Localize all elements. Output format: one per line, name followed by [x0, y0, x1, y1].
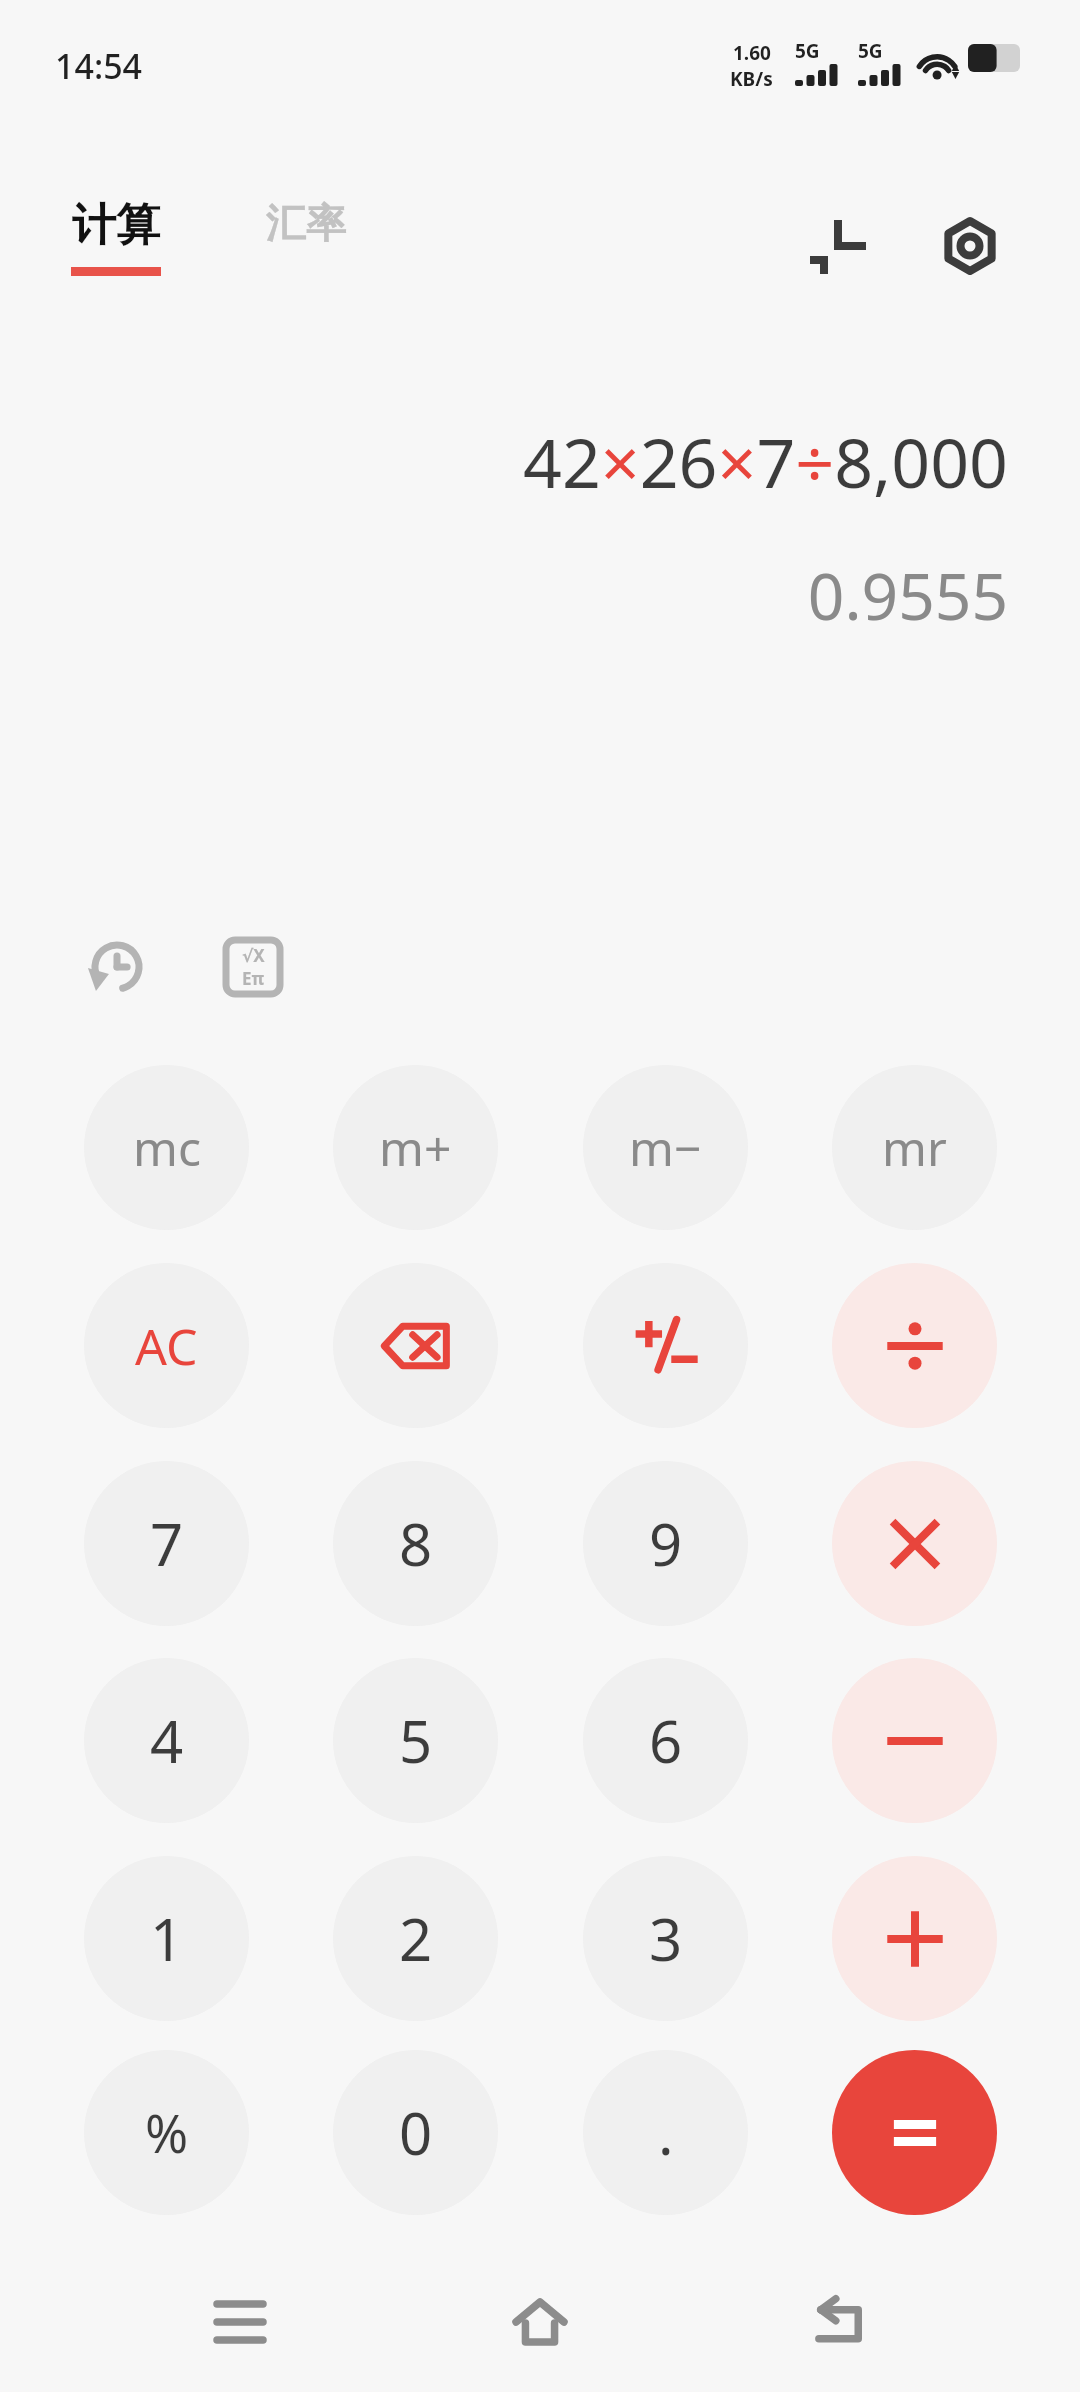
- staticText: %: [145, 2097, 189, 2168]
- button[interactable]: Collapse: [790, 198, 886, 294]
- staticText: KB/s: [730, 66, 773, 92]
- staticText: 7: [150, 1504, 184, 1583]
- staticText: 3: [649, 1899, 683, 1978]
- button[interactable]: Back: [780, 2262, 900, 2382]
- button[interactable]: 1: [84, 1856, 249, 2021]
- button[interactable]: Recents: [180, 2262, 300, 2382]
- staticText: mc: [133, 1115, 201, 1180]
- button[interactable]: 汇率: [250, 190, 362, 256]
- staticText: 14:54: [55, 43, 143, 89]
- button[interactable]: Settings: [922, 198, 1018, 294]
- button[interactable]: Divide: [832, 1263, 997, 1428]
- button[interactable]: 5: [333, 1658, 498, 1823]
- staticText: 5G: [795, 38, 820, 64]
- button[interactable]: 2: [333, 1856, 498, 2021]
- button[interactable]: %: [84, 2050, 249, 2215]
- button[interactable]: m−: [583, 1065, 748, 1230]
- staticText: 计算: [72, 198, 160, 253]
- button[interactable]: m+: [333, 1065, 498, 1230]
- staticText: 2: [399, 1899, 433, 1978]
- staticText: 0: [399, 2093, 433, 2172]
- button[interactable]: Multiply: [832, 1461, 997, 1626]
- staticText: mr: [882, 1115, 947, 1180]
- button[interactable]: mc: [84, 1065, 249, 1230]
- button[interactable]: Equals: [832, 2050, 997, 2215]
- button[interactable]: 0: [333, 2050, 498, 2215]
- staticText: 5: [399, 1701, 433, 1780]
- button[interactable]: Plus minus: [583, 1263, 748, 1428]
- staticText: AC: [135, 1312, 198, 1380]
- staticText: .: [658, 2093, 674, 2172]
- button[interactable]: History: [62, 912, 172, 1022]
- button[interactable]: Subtract: [832, 1658, 997, 1823]
- staticText: 汇率: [266, 198, 346, 248]
- staticText: 4: [150, 1701, 184, 1780]
- button[interactable]: mr: [832, 1065, 997, 1230]
- button[interactable]: Backspace: [333, 1263, 498, 1428]
- button[interactable]: AC: [84, 1263, 249, 1428]
- staticText: m+: [379, 1115, 452, 1180]
- button[interactable]: Home: [480, 2262, 600, 2382]
- button[interactable]: 4: [84, 1658, 249, 1823]
- button[interactable]: .: [583, 2050, 748, 2215]
- staticText: 42×26×7÷8,000: [523, 415, 1008, 508]
- staticText: 1: [150, 1899, 184, 1978]
- staticText: 0.9555: [807, 552, 1008, 639]
- button[interactable]: 7: [84, 1461, 249, 1626]
- staticText: 5G: [858, 38, 883, 64]
- staticText: 8: [399, 1504, 433, 1583]
- staticText: 6: [649, 1701, 683, 1780]
- staticText: m−: [629, 1115, 702, 1180]
- button[interactable]: 8: [333, 1461, 498, 1626]
- button[interactable]: 3: [583, 1856, 748, 2021]
- button[interactable]: Add: [832, 1856, 997, 2021]
- button[interactable]: 6: [583, 1658, 748, 1823]
- staticText: 1.60: [733, 40, 771, 66]
- staticText: √X: [242, 944, 265, 967]
- button[interactable]: 计算: [55, 190, 177, 284]
- button[interactable]: 9: [583, 1461, 748, 1626]
- staticText: Eπ: [242, 967, 265, 990]
- staticText: 9: [649, 1504, 683, 1583]
- button[interactable]: Scientific functions: [198, 912, 308, 1022]
